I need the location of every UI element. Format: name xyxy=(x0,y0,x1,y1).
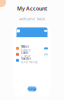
staticText: Transfer xyxy=(21,57,31,60)
button[interactable]: Cards xyxy=(14,51,50,57)
staticText: welcome back xyxy=(19,16,45,21)
staticText: Wallet xyxy=(21,45,29,48)
button[interactable]: Continue xyxy=(27,86,36,91)
button[interactable]: Transfer xyxy=(14,57,50,63)
staticText: Cards xyxy=(21,51,28,54)
staticText: My Account xyxy=(17,5,47,12)
button[interactable]: Wallet xyxy=(14,45,50,51)
staticText: 2 active xyxy=(21,54,31,58)
staticText: send money xyxy=(21,60,37,64)
staticText: Continue xyxy=(27,85,36,92)
staticText: balance xyxy=(21,48,31,52)
